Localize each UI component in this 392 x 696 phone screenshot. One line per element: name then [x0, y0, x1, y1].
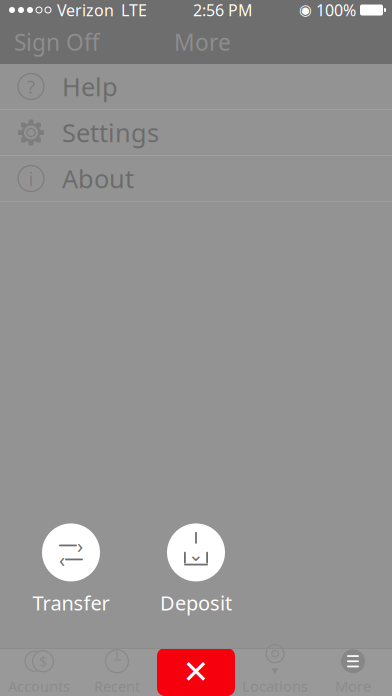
staticText: Verizon [57, 0, 114, 21]
staticText: LTE [121, 0, 147, 21]
staticText: ⌄ [188, 544, 204, 565]
staticText: ? [27, 74, 35, 99]
button[interactable]: Settings [0, 110, 392, 156]
staticText: i [28, 166, 33, 191]
staticText: › [77, 532, 83, 559]
staticText: ▾ [271, 663, 278, 678]
staticText: Transfer [32, 589, 109, 616]
button[interactable]: i [0, 156, 392, 202]
staticText: More [335, 676, 371, 696]
button[interactable]: Close [157, 648, 235, 696]
staticText: Locations [242, 676, 308, 696]
staticText: 2:56 PM [193, 0, 253, 21]
staticText: Sign Off [14, 27, 100, 57]
staticText: Deposit [160, 589, 232, 616]
button[interactable]: Sign Off [0, 20, 114, 64]
button[interactable]: ▾ [236, 648, 314, 695]
staticText: More [174, 27, 231, 57]
staticText: $ [39, 651, 47, 671]
button[interactable]: $ [0, 648, 78, 695]
staticText: ‹ [59, 546, 65, 573]
staticText: Help [62, 70, 118, 103]
staticText: Settings [62, 116, 159, 149]
staticText: ◉ [299, 2, 312, 18]
staticText: About [62, 162, 134, 195]
button[interactable]: › [21, 523, 121, 616]
button[interactable]: More [314, 648, 392, 695]
staticText: ✕ [182, 654, 209, 690]
staticText: 100% [316, 0, 356, 21]
button[interactable]: ? [0, 64, 392, 110]
staticText: Accounts [8, 676, 70, 696]
button[interactable]: Recent [78, 648, 156, 695]
button[interactable]: ⌄ [146, 523, 246, 616]
staticText: Recent [94, 676, 140, 696]
